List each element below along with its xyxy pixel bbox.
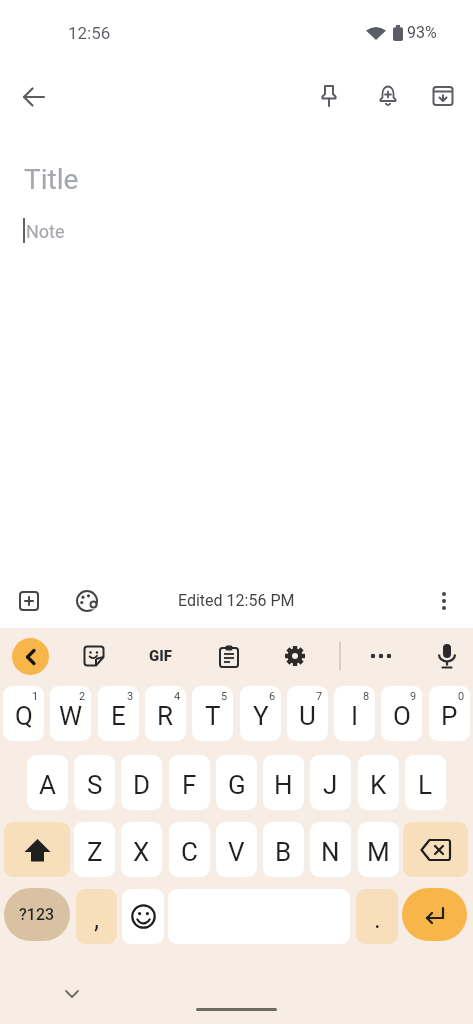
staticText: C: [181, 837, 198, 867]
button[interactable]: [420, 577, 468, 625]
button[interactable]: [70, 632, 118, 680]
button[interactable]: Q: [3, 686, 44, 741]
button[interactable]: [48, 974, 96, 1014]
staticText: GIF: [149, 647, 172, 665]
staticText: 93%: [407, 23, 437, 42]
button[interactable]: E: [98, 686, 139, 741]
staticText: V: [228, 837, 245, 867]
button[interactable]: C: [169, 822, 210, 877]
button[interactable]: M: [358, 822, 399, 877]
staticText: Y: [253, 701, 269, 731]
button[interactable]: [5, 577, 53, 625]
button[interactable]: GIF: [136, 632, 184, 680]
button[interactable]: [364, 72, 412, 120]
button[interactable]: A: [27, 755, 68, 810]
staticText: 2: [79, 690, 86, 703]
staticText: I: [351, 701, 359, 731]
button[interactable]: H: [263, 755, 304, 810]
staticText: Edited 12:56 PM: [178, 591, 295, 610]
staticText: F: [182, 770, 197, 800]
staticText: B: [275, 837, 292, 867]
staticText: 8: [363, 690, 370, 703]
staticText: 5: [221, 690, 228, 703]
staticText: K: [370, 770, 387, 800]
staticText: 1: [32, 690, 39, 703]
staticText: Q: [15, 701, 33, 731]
button[interactable]: [305, 72, 353, 120]
staticText: ,: [94, 904, 100, 934]
button[interactable]: O: [381, 686, 422, 741]
staticText: E: [111, 701, 126, 731]
staticText: J: [323, 770, 338, 800]
staticText: T: [205, 701, 221, 731]
button[interactable]: J: [310, 755, 351, 810]
staticText: G: [228, 770, 246, 800]
button[interactable]: [63, 577, 111, 625]
button[interactable]: L: [405, 755, 446, 810]
button[interactable]: X: [121, 822, 162, 877]
staticText: 3: [127, 690, 134, 703]
staticText: A: [39, 770, 56, 800]
staticText: H: [274, 770, 293, 800]
button[interactable]: [403, 822, 468, 877]
staticText: 4: [174, 690, 181, 703]
staticText: X: [133, 837, 150, 867]
staticText: 6: [269, 690, 276, 703]
button[interactable]: U: [287, 686, 328, 741]
button[interactable]: [10, 73, 58, 121]
staticText: L: [418, 770, 433, 800]
staticText: ?123: [19, 905, 55, 924]
button[interactable]: I: [334, 686, 375, 741]
staticText: O: [393, 701, 411, 731]
staticText: R: [157, 701, 174, 731]
staticText: D: [133, 770, 151, 800]
button[interactable]: T: [192, 686, 233, 741]
staticText: M: [367, 837, 390, 867]
staticText: S: [87, 770, 103, 800]
button[interactable]: Y: [240, 686, 281, 741]
staticText: 7: [316, 690, 323, 703]
button[interactable]: S: [74, 755, 115, 810]
button[interactable]: V: [216, 822, 257, 877]
button[interactable]: N: [310, 822, 351, 877]
staticText: 12:56: [68, 23, 111, 43]
button[interactable]: [122, 889, 164, 944]
button[interactable]: Z: [74, 822, 115, 877]
button[interactable]: D: [121, 755, 162, 810]
button[interactable]: [205, 632, 253, 680]
staticText: U: [299, 701, 316, 731]
button[interactable]: [12, 638, 49, 675]
staticText: Z: [87, 837, 103, 867]
staticText: Title: [24, 163, 79, 196]
staticText: .: [374, 904, 381, 934]
staticText: 0: [458, 690, 465, 703]
staticText: P: [441, 701, 458, 731]
staticText: 9: [410, 690, 417, 703]
staticText: W: [59, 701, 83, 731]
button[interactable]: ,: [76, 889, 117, 944]
button[interactable]: P: [429, 686, 470, 741]
button[interactable]: ?123: [4, 888, 70, 941]
staticText: Note: [26, 221, 65, 242]
button[interactable]: B: [263, 822, 304, 877]
button[interactable]: [357, 632, 405, 680]
button[interactable]: [423, 632, 471, 680]
button[interactable]: .: [356, 889, 398, 944]
button[interactable]: G: [216, 755, 257, 810]
button[interactable]: F: [169, 755, 210, 810]
button[interactable]: [402, 888, 467, 941]
button[interactable]: [4, 822, 70, 877]
button[interactable]: [271, 632, 319, 680]
button[interactable]: [419, 72, 467, 120]
button[interactable]: R: [145, 686, 186, 741]
button[interactable]: W: [50, 686, 91, 741]
staticText: N: [321, 837, 340, 867]
button[interactable]: K: [358, 755, 399, 810]
